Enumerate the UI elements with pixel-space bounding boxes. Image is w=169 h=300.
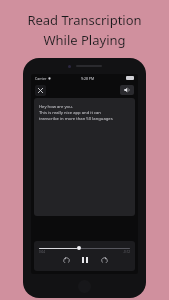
button[interactable]: Hey how are you. <box>34 98 135 216</box>
button[interactable]: Forward 15 seconds <box>99 255 109 265</box>
button[interactable]: Pause <box>80 255 90 265</box>
staticText: While Playing <box>43 31 126 49</box>
staticText: Hey how are you. <box>39 104 73 110</box>
staticText: transcribe in more than 50 languages <box>39 116 113 122</box>
staticText: -0:12 <box>123 250 130 254</box>
button[interactable]: Rewind 15 seconds <box>61 255 71 265</box>
staticText: This is really nice app and it can <box>39 110 101 116</box>
button[interactable]: Speaker <box>120 85 134 95</box>
button[interactable]: Close <box>35 85 46 96</box>
button[interactable] <box>77 246 81 250</box>
staticText: Carrier <box>35 76 47 81</box>
staticText: Read Transcription <box>27 11 142 29</box>
staticText: 9:28 PM <box>81 76 95 81</box>
staticText: 0:04 <box>39 250 45 254</box>
